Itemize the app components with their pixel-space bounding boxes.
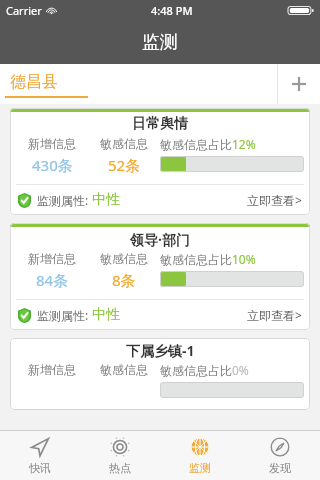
- button[interactable]: 日常舆情: [10, 108, 310, 215]
- staticText: 新增信息: [28, 362, 76, 377]
- staticText: 德昌县: [10, 72, 58, 92]
- staticText: 监测: [189, 461, 211, 475]
- button[interactable]: 热点: [80, 430, 160, 480]
- staticText: 敏感信息: [100, 136, 148, 151]
- button[interactable]: 领导·部门: [10, 223, 310, 330]
- staticText: 新增信息: [28, 136, 76, 151]
- staticText: 84条: [36, 270, 69, 290]
- staticText: 0%: [232, 362, 249, 378]
- staticText: 10%: [232, 251, 256, 267]
- staticText: Carrier: [6, 3, 42, 18]
- staticText: 8条: [112, 270, 136, 290]
- staticText: 发现: [269, 461, 291, 475]
- staticText: 4:48 PM: [151, 3, 193, 18]
- staticText: 监测属性:: [37, 307, 89, 323]
- staticText: 领导·部门: [130, 230, 190, 249]
- staticText: 下属乡镇-1: [126, 341, 195, 360]
- staticText: 敏感信息占比: [160, 363, 232, 378]
- staticText: 立即查看>: [247, 192, 302, 208]
- staticText: 监测属性:: [37, 192, 89, 208]
- staticText: 430条: [32, 155, 73, 175]
- button[interactable]: 发现: [240, 430, 320, 480]
- staticText: 敏感信息占比: [160, 252, 232, 267]
- button[interactable]: 立即查看>: [247, 192, 302, 208]
- staticText: 日常舆情: [132, 115, 188, 133]
- staticText: 快讯: [29, 461, 51, 475]
- staticText: 中性: [92, 306, 120, 324]
- button[interactable]: 立即查看>: [247, 307, 302, 323]
- button[interactable]: Add: [278, 64, 320, 104]
- button[interactable]: 快讯: [0, 430, 80, 480]
- staticText: 中性: [92, 191, 120, 209]
- button[interactable]: 德昌县: [0, 64, 277, 104]
- staticText: 12%: [232, 136, 256, 152]
- staticText: 52条: [108, 155, 141, 175]
- staticText: 新增信息: [28, 251, 76, 266]
- staticText: 敏感信息: [100, 251, 148, 266]
- button[interactable]: 监测: [160, 430, 240, 480]
- staticText: 敏感信息: [100, 362, 148, 377]
- staticText: 热点: [109, 461, 131, 475]
- staticText: 监测: [142, 31, 178, 54]
- button[interactable]: 下属乡镇-1: [10, 338, 310, 410]
- staticText: 敏感信息占比: [160, 137, 232, 152]
- staticText: 立即查看>: [247, 307, 302, 323]
